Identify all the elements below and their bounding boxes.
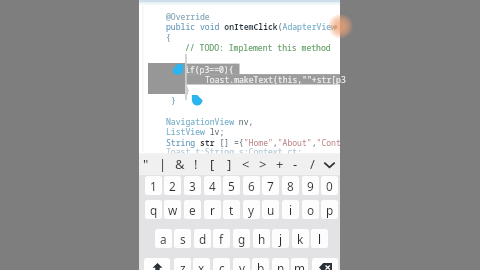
staticText: m: [294, 260, 306, 270]
staticText: k: [297, 231, 304, 247]
button[interactable]: w: [164, 200, 181, 219]
staticText: 7: [267, 178, 274, 194]
staticText: z: [180, 260, 186, 270]
staticText: c: [219, 260, 225, 270]
button[interactable]: Shift: [144, 258, 170, 270]
staticText: @Override: [166, 11, 210, 22]
button[interactable]: -: [287, 153, 304, 175]
staticText: q: [150, 202, 158, 218]
staticText: 9: [307, 178, 314, 194]
staticText: b: [257, 260, 265, 270]
button[interactable]: ": [137, 153, 154, 175]
button[interactable]: 0: [321, 176, 338, 195]
button[interactable]: p: [321, 200, 338, 219]
button[interactable]: >: [254, 153, 271, 175]
button[interactable]: 3: [184, 176, 201, 195]
button[interactable]: &: [171, 153, 188, 175]
button[interactable]: i: [282, 200, 299, 219]
button[interactable]: l: [311, 229, 328, 248]
button[interactable]: d: [194, 229, 211, 248]
staticText: x: [198, 260, 205, 270]
button[interactable]: 8: [282, 176, 299, 195]
staticText: l: [318, 231, 322, 247]
button[interactable]: Text selection toolbar: [148, 63, 185, 94]
button[interactable]: +: [271, 153, 288, 175]
staticText: ": [143, 155, 149, 173]
button[interactable]: j: [272, 229, 289, 248]
staticText: u: [267, 202, 275, 218]
staticText: <: [242, 155, 250, 173]
button[interactable]: u: [262, 200, 279, 219]
staticText: o: [307, 202, 315, 218]
staticText: r: [210, 202, 215, 218]
button[interactable]: h: [253, 229, 270, 248]
staticText: 1: [150, 178, 157, 194]
staticText: v: [239, 260, 245, 270]
button[interactable]: r: [204, 200, 221, 219]
staticText: &: [175, 155, 185, 173]
staticText: 2: [169, 178, 176, 194]
staticText: [: [210, 155, 215, 173]
staticText: >: [259, 155, 267, 173]
button[interactable]: /: [304, 153, 321, 175]
button[interactable]: [: [204, 153, 221, 175]
button[interactable]: y: [243, 200, 260, 219]
staticText: !: [194, 155, 198, 173]
staticText: /: [310, 155, 315, 173]
button[interactable]: 6: [243, 176, 260, 195]
staticText: 4: [209, 178, 216, 194]
staticText: public void onItemClick(AdapterView: [166, 21, 336, 32]
button[interactable]: z: [174, 258, 191, 270]
staticText: h: [258, 231, 266, 247]
staticText: f: [219, 231, 224, 247]
button[interactable]: Hide keyboard: [321, 153, 338, 175]
button[interactable]: Backspace: [312, 258, 338, 270]
staticText: Toast.makeText(this,""+str[p3: [205, 74, 346, 85]
staticText: ]: [227, 155, 232, 173]
staticText: NavigationView nv,: [166, 116, 254, 127]
button[interactable]: g: [233, 229, 250, 248]
button[interactable]: f: [213, 229, 230, 248]
staticText: n: [277, 260, 285, 270]
staticText: +: [276, 155, 284, 173]
staticText: if(p3==0){: [185, 64, 234, 75]
button[interactable]: v: [233, 258, 250, 270]
staticText: // TODO: Implement this method: [185, 42, 331, 53]
button[interactable]: 1: [145, 176, 162, 195]
button[interactable]: x: [193, 258, 210, 270]
staticText: 8: [287, 178, 294, 194]
staticText: 6: [248, 178, 255, 194]
button[interactable]: <: [237, 153, 254, 175]
button[interactable]: s: [174, 229, 191, 248]
staticText: d: [199, 231, 207, 247]
staticText: w: [168, 202, 178, 218]
button[interactable]: c: [213, 258, 230, 270]
staticText: }: [185, 85, 190, 96]
staticText: i: [289, 202, 293, 218]
staticText: p: [326, 202, 334, 218]
button[interactable]: e: [184, 200, 201, 219]
button[interactable]: b: [252, 258, 269, 270]
button[interactable]: 4: [204, 176, 221, 195]
button[interactable]: m: [291, 258, 308, 270]
button[interactable]: q: [145, 200, 162, 219]
staticText: |: [159, 155, 167, 173]
button[interactable]: t: [223, 200, 240, 219]
staticText: a: [160, 231, 167, 247]
button[interactable]: a: [155, 229, 172, 248]
staticText: String str [] ={"Home","About","Cont: [166, 137, 341, 148]
button[interactable]: ]: [221, 153, 238, 175]
button[interactable]: !: [187, 153, 204, 175]
button[interactable]: 5: [223, 176, 240, 195]
button[interactable]: n: [272, 258, 289, 270]
staticText: e: [189, 202, 196, 218]
staticText: s: [180, 231, 186, 247]
staticText: 3: [189, 178, 196, 194]
button[interactable]: 2: [164, 176, 181, 195]
staticText: g: [238, 231, 246, 247]
button[interactable]: 9: [302, 176, 319, 195]
button[interactable]: 7: [262, 176, 279, 195]
button[interactable]: |: [154, 153, 171, 175]
button[interactable]: o: [302, 200, 319, 219]
button[interactable]: k: [292, 229, 309, 248]
